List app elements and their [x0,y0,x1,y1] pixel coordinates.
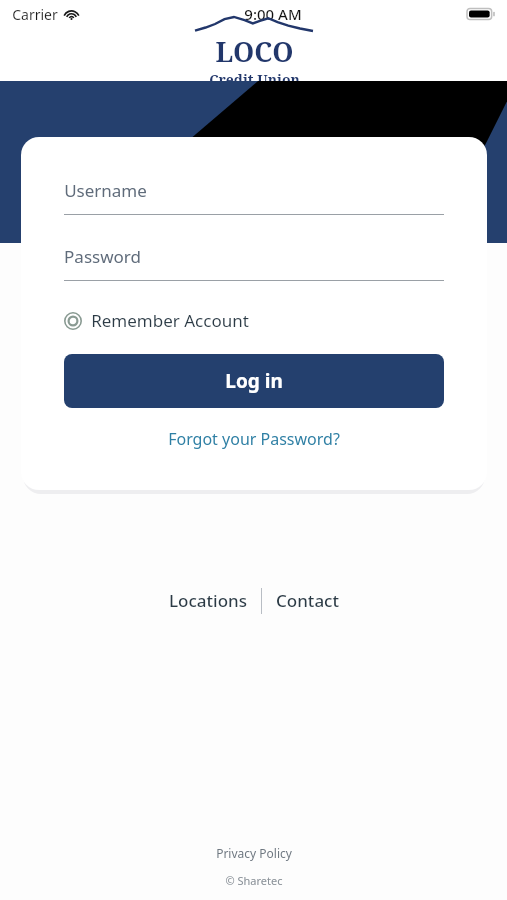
button[interactable]: Username [64,179,444,215]
staticText: Log in [225,368,283,394]
staticText: Contact [276,589,339,612]
staticText: Credit Union [209,70,300,89]
button[interactable]: Log in [64,354,444,408]
button[interactable]: Remember Account [64,305,249,336]
button[interactable]: Locations [163,585,253,616]
staticText: Remember Account [91,309,249,332]
button[interactable]: Privacy Policy [208,843,300,863]
staticText: Username [64,179,147,202]
staticText: Password [64,245,141,268]
staticText: 9:00 AM [244,4,302,24]
button[interactable]: Contact [270,585,345,616]
staticText: © Sharetec [225,873,283,888]
button[interactable]: Password [64,245,444,281]
staticText: Locations [169,589,247,612]
button[interactable]: Forgot your Password? [160,424,348,454]
staticText: Forgot your Password? [168,428,340,450]
staticText: LOCO [215,33,294,70]
staticText: Carrier [12,5,58,24]
staticText: Privacy Policy [216,845,292,861]
